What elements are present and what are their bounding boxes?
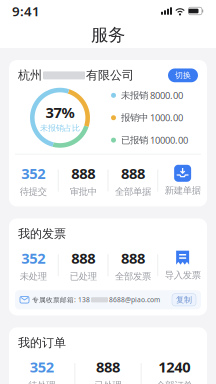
staticText: 352 (30, 357, 54, 377)
staticText: 888 (96, 357, 120, 377)
staticText: 1240 (158, 357, 190, 377)
button[interactable]: 1240 (142, 357, 207, 384)
staticText: 导入发票 (165, 269, 201, 281)
staticText: 全部发票 (115, 271, 151, 282)
staticText: 专属收票邮箱: 138 (32, 295, 90, 304)
staticText: 我的发票 (18, 226, 66, 241)
button[interactable]: 导入发票 (158, 249, 207, 281)
staticText: 888 (121, 248, 145, 268)
staticText: 服务 (91, 24, 125, 46)
staticText: 报销中 (121, 112, 148, 123)
staticText: 待提交 (20, 186, 47, 197)
staticText: 全部单据 (115, 186, 151, 197)
staticText: 未报销 (121, 90, 148, 101)
staticText: 待处理 (28, 380, 55, 384)
staticText: 352 (21, 163, 45, 183)
staticText: 1000.00 (150, 111, 183, 124)
staticText: 全部订单 (156, 380, 192, 384)
button[interactable]: 888 (59, 163, 108, 197)
button[interactable]: 新建单据 (158, 165, 207, 196)
button[interactable]: 352 (9, 248, 58, 282)
staticText: 我的订单 (18, 335, 66, 350)
staticText: 9:41 (12, 2, 40, 20)
staticText: 有限公司 (86, 68, 134, 83)
staticText: 已报销 (121, 134, 148, 146)
button[interactable]: 888 (108, 163, 157, 197)
staticText: 审批中 (70, 186, 97, 197)
staticText: 888 (121, 163, 145, 183)
staticText: 10000.00 (150, 134, 188, 146)
button[interactable]: 888 (75, 357, 141, 384)
button[interactable]: 888 (59, 248, 108, 282)
button[interactable]: 切换 (168, 68, 198, 82)
staticText: 8000.00 (150, 89, 183, 101)
staticText: 888 (71, 163, 95, 183)
staticText: 888 (71, 248, 95, 268)
staticText: 8688@piao.com (109, 295, 160, 304)
staticText: 37% (45, 103, 74, 122)
staticText: 复制 (176, 295, 192, 305)
button[interactable]: 352 (9, 163, 58, 197)
staticText: 352 (21, 248, 45, 268)
staticText: 已处理 (94, 380, 121, 384)
staticText: 未报销占比 (40, 123, 80, 133)
button[interactable]: 复制 (172, 294, 196, 306)
staticText: 杭州 (18, 68, 42, 83)
staticText: 新建单据 (165, 185, 201, 196)
staticText: 已处理 (70, 271, 97, 282)
button[interactable]: 352 (9, 357, 74, 384)
staticText: 切换 (175, 70, 191, 80)
staticText: 未处理 (20, 271, 47, 282)
button[interactable]: 888 (108, 248, 157, 282)
